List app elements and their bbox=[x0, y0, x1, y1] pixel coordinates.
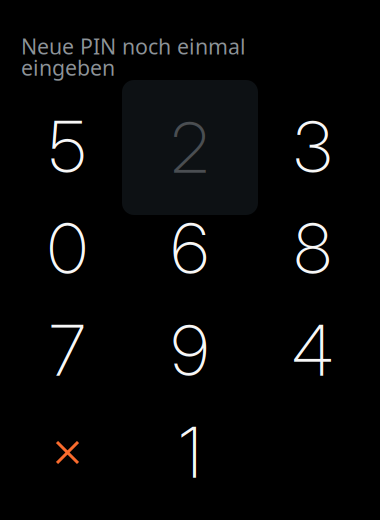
staticText: 4 bbox=[292, 309, 333, 392]
button[interactable]: 1 bbox=[129, 401, 251, 503]
button[interactable]: 5 bbox=[6, 95, 129, 197]
button[interactable]: 3 bbox=[251, 95, 374, 197]
staticText: 5 bbox=[49, 105, 86, 188]
button[interactable]: 7 bbox=[6, 299, 129, 401]
button[interactable]: 6 bbox=[129, 197, 251, 299]
button[interactable]: Delete bbox=[6, 401, 129, 503]
button[interactable]: 9 bbox=[129, 299, 251, 401]
button[interactable]: 4 bbox=[251, 299, 374, 401]
staticText: 3 bbox=[293, 105, 331, 188]
staticText: 0 bbox=[47, 207, 87, 290]
staticText: Neue PIN noch einmal eingeben bbox=[21, 32, 246, 82]
staticText: 8 bbox=[294, 207, 331, 290]
button[interactable]: 0 bbox=[6, 197, 129, 299]
staticText: 9 bbox=[171, 309, 209, 392]
button[interactable]: 2 bbox=[122, 80, 258, 215]
button[interactable]: 8 bbox=[251, 197, 374, 299]
staticText: 1 bbox=[179, 411, 201, 494]
staticText: 6 bbox=[171, 207, 209, 290]
staticText: 2 bbox=[171, 106, 209, 189]
staticText: 7 bbox=[49, 309, 85, 392]
